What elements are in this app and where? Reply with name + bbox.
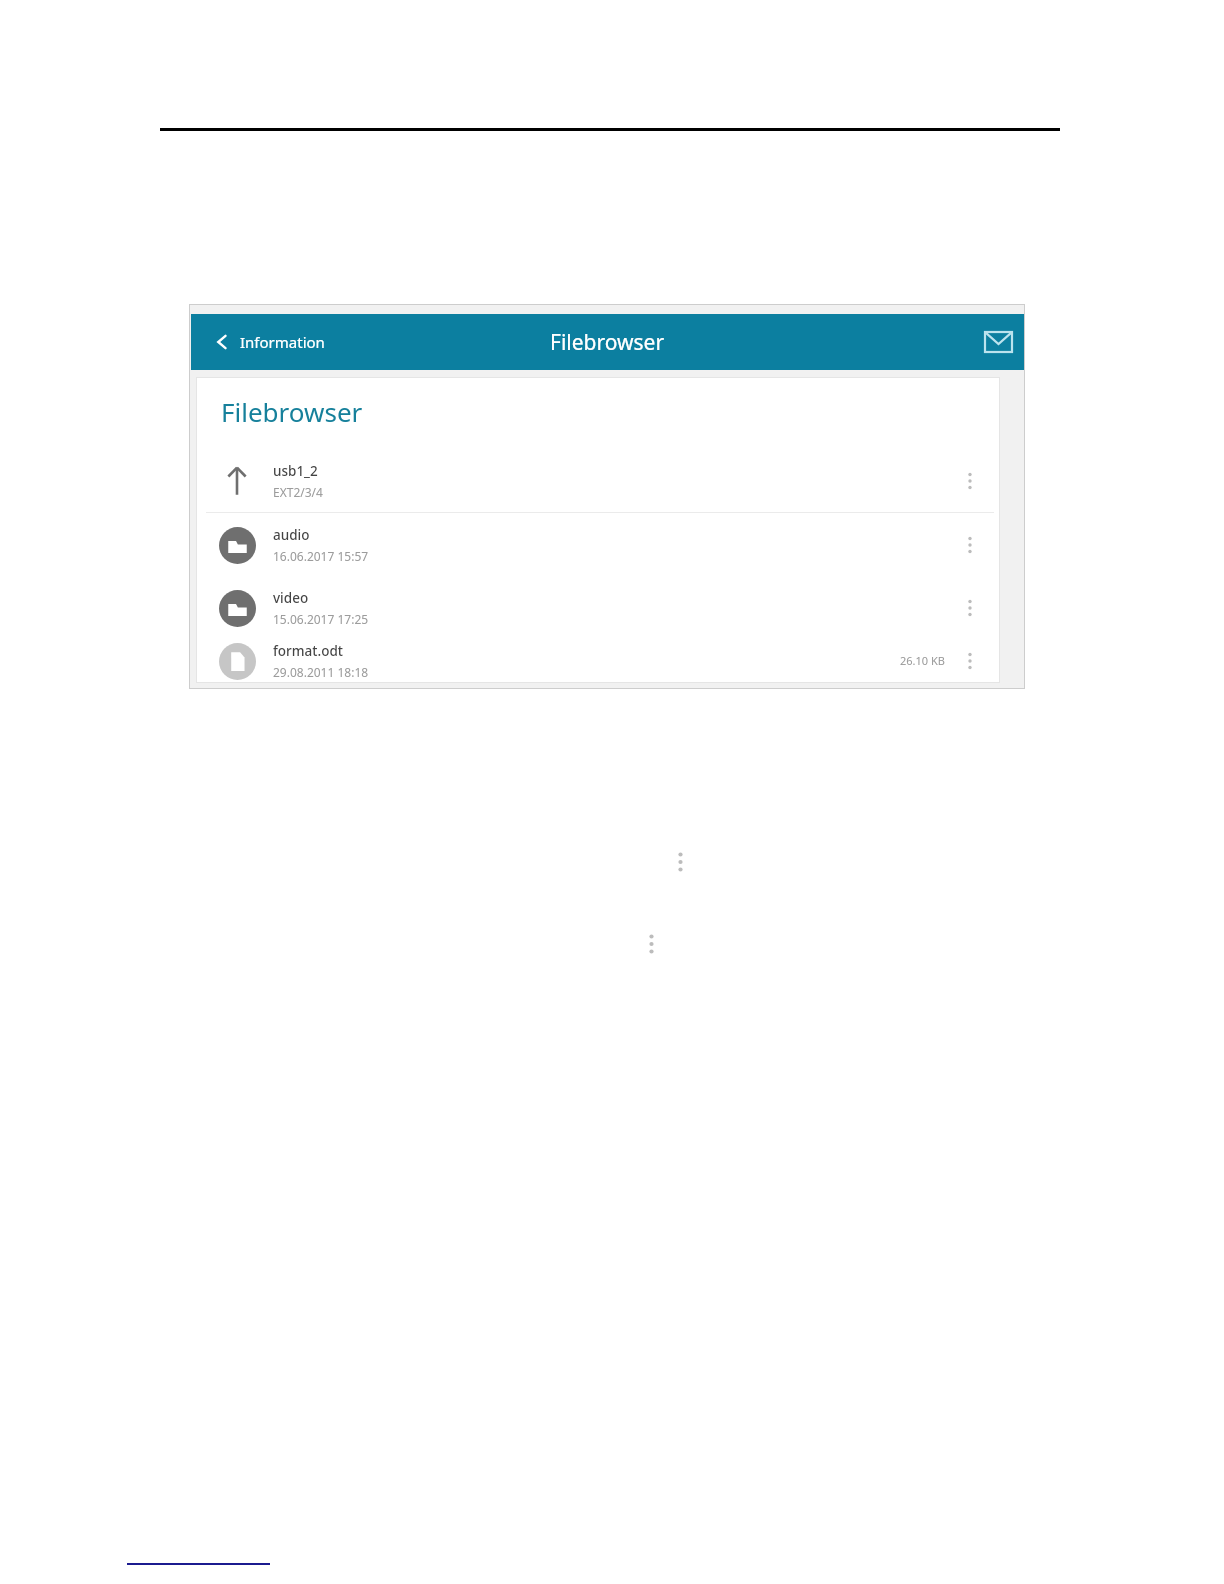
staticText: EXT2/3/4 [273, 484, 323, 500]
staticText: 29.08.2011 18:18 [273, 664, 369, 680]
staticText: video [273, 589, 309, 607]
button[interactable]: video [197, 576, 999, 639]
button[interactable]: format.odt [197, 639, 999, 682]
staticText: 15.06.2017 17:25 [273, 611, 369, 627]
button[interactable]: More options [640, 933, 662, 955]
button[interactable]: audio [197, 513, 999, 576]
staticText: usb1_2 [273, 462, 318, 480]
button[interactable]: More options [953, 528, 987, 562]
staticText: Filebrowser [221, 394, 363, 429]
staticText: 26.10 KB [900, 653, 945, 668]
staticText: 16.06.2017 15:57 [273, 548, 369, 564]
staticText: format.odt [273, 642, 343, 660]
button[interactable]: More options [953, 591, 987, 625]
staticText: Filebrowser [550, 328, 665, 357]
staticText: Information [240, 332, 325, 352]
button[interactable]: More options [953, 644, 987, 678]
button[interactable]: usb1_2 [197, 449, 999, 512]
button[interactable]: More options [669, 851, 691, 873]
button[interactable]: More options [953, 464, 987, 498]
button[interactable]: Messages [974, 318, 1022, 366]
button[interactable]: Information [205, 314, 331, 370]
staticText: audio [273, 526, 310, 544]
